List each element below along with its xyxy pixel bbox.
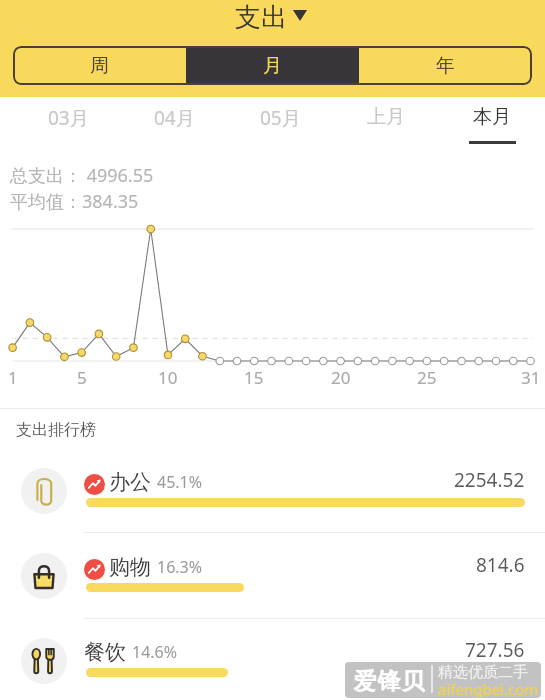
staticText: 2254.52: [454, 467, 525, 493]
staticText: 本月: [473, 105, 511, 129]
button[interactable]: 05月: [227, 97, 333, 150]
staticText: 支出排行榜: [16, 420, 96, 440]
staticText: 支出: [235, 1, 287, 34]
staticText: 04月: [154, 105, 195, 131]
staticText: 年: [436, 54, 455, 78]
button[interactable]: 支出 选择账本: [235, 1, 307, 34]
staticText: 727.56: [465, 637, 525, 663]
staticText: 05月: [260, 105, 301, 131]
staticText: 45.1%: [157, 471, 203, 493]
button[interactable]: 04月: [121, 97, 227, 150]
staticText: 10: [158, 366, 178, 389]
button[interactable]: 餐饮: [0, 617, 545, 700]
staticText: 5: [77, 366, 87, 389]
staticText: 15: [244, 366, 264, 389]
button[interactable]: 购物: [0, 532, 545, 617]
staticText: 14.6%: [132, 641, 178, 663]
staticText: 爱锋贝: [353, 667, 425, 696]
button[interactable]: 办公: [0, 447, 545, 532]
staticText: 购物: [109, 554, 151, 580]
button[interactable]: 月: [186, 46, 359, 85]
staticText: 20: [331, 366, 351, 389]
staticText: 25: [417, 366, 437, 389]
staticText: 月: [263, 54, 282, 78]
staticText: 16.3%: [157, 556, 203, 578]
staticText: aifengbei.com: [438, 679, 539, 698]
staticText: 周: [90, 54, 109, 78]
staticText: 办公: [109, 469, 151, 495]
staticText: 814.6: [476, 552, 525, 578]
button[interactable]: 周: [13, 46, 186, 85]
button[interactable]: 本月: [439, 97, 545, 150]
staticText: 31: [521, 366, 541, 389]
staticText: 1: [8, 366, 18, 389]
button[interactable]: 上月: [333, 97, 439, 150]
button[interactable]: 03月: [15, 97, 121, 150]
staticText: 平均值：384.35: [10, 189, 139, 214]
staticText: 总支出： 4996.55: [10, 163, 154, 188]
staticText: 餐饮: [84, 639, 126, 665]
staticText: 03月: [48, 105, 89, 131]
staticText: 精选优质二手: [438, 663, 528, 682]
button[interactable]: 年: [359, 46, 532, 85]
staticText: 上月: [367, 105, 405, 129]
